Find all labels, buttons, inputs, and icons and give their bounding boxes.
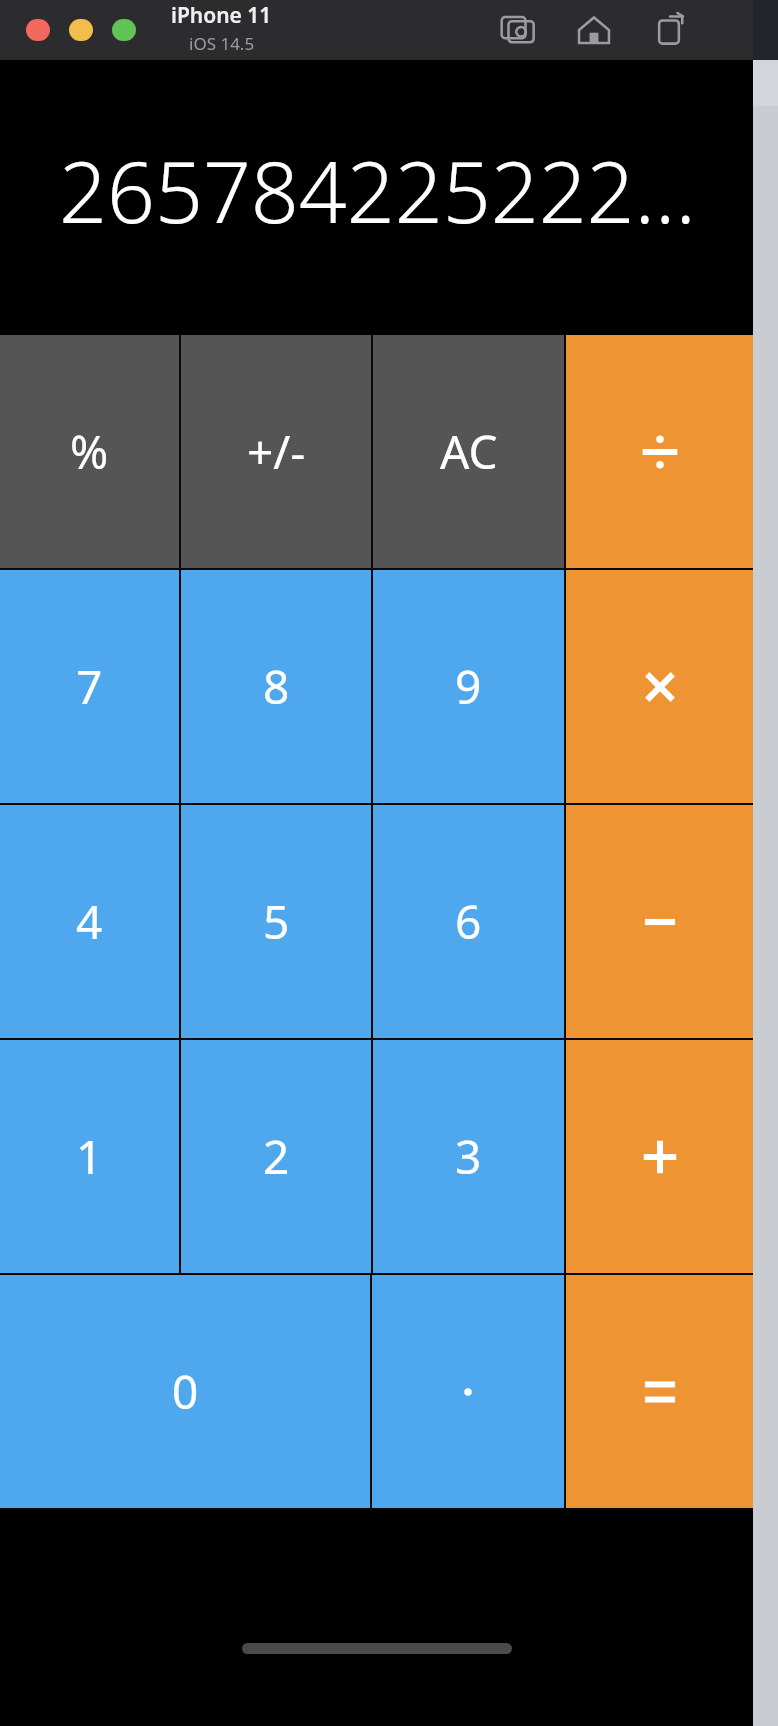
button[interactable]: -	[566, 805, 753, 1038]
button[interactable]: Rotate	[649, 9, 691, 51]
staticText: 2	[263, 1125, 290, 1188]
button[interactable]: ÷	[566, 335, 753, 568]
button[interactable]: ×	[566, 570, 753, 803]
button[interactable]: 3	[373, 1040, 564, 1273]
button[interactable]: Minimize	[69, 19, 93, 41]
staticText: iOS 14.5	[189, 32, 255, 55]
staticText: BA	[688, 782, 724, 823]
button[interactable]: 6	[373, 805, 564, 1038]
button[interactable]: +	[566, 1040, 753, 1273]
staticText: BA	[688, 542, 724, 583]
staticText: 265784225222…	[20, 133, 735, 247]
button[interactable]: 4	[0, 805, 179, 1038]
button[interactable]: 5	[181, 805, 371, 1038]
button[interactable]: Zoom	[112, 19, 136, 41]
staticText: iPhone 11	[171, 1, 272, 30]
button[interactable]: =	[566, 1275, 753, 1508]
staticText: %	[70, 420, 109, 483]
button[interactable]: %	[0, 335, 179, 568]
button[interactable]: 8	[181, 570, 371, 803]
button[interactable]: Home	[573, 9, 615, 51]
button[interactable]: Screenshot	[497, 9, 539, 51]
button[interactable]: 7	[0, 570, 179, 803]
staticText: 6	[455, 890, 482, 953]
staticText: 1	[76, 1125, 103, 1188]
button[interactable]: .	[372, 1275, 564, 1508]
button[interactable]: 1	[0, 1040, 179, 1273]
staticText: 9	[455, 655, 482, 718]
staticText: 7	[76, 655, 103, 718]
staticText: 4	[76, 890, 103, 953]
staticText: 5	[263, 890, 290, 953]
button[interactable]: 2	[181, 1040, 371, 1273]
button[interactable]: Close	[26, 19, 50, 41]
button[interactable]: 9	[373, 570, 564, 803]
button[interactable]: +/-	[181, 335, 371, 568]
button[interactable]: 0	[0, 1275, 370, 1508]
button[interactable]: AC	[373, 335, 564, 568]
staticText: 8	[263, 655, 290, 718]
staticText: AC	[440, 420, 498, 483]
staticText: +/-	[247, 420, 306, 483]
staticText: Vi	[688, 302, 724, 343]
staticText: U	[688, 206, 706, 247]
staticText: 0	[172, 1360, 199, 1423]
staticText: 3	[455, 1125, 482, 1188]
